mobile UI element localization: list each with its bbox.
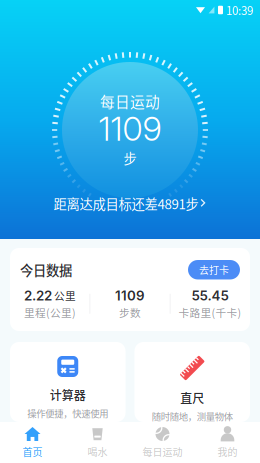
staticText: 步数	[119, 305, 141, 320]
staticText: 首页	[22, 444, 42, 459]
staticText: 2.22	[24, 287, 52, 304]
button[interactable]: 直尺	[134, 342, 250, 422]
staticText: 55.45	[191, 287, 228, 304]
staticText: 我的	[217, 444, 237, 459]
staticText: 公里	[54, 288, 76, 303]
button[interactable]: 我的	[195, 422, 260, 463]
staticText: 随时随地，测量物体	[152, 409, 233, 423]
button[interactable]: 喝水	[65, 422, 130, 463]
staticText: 1109	[98, 108, 161, 149]
staticText: 1109	[115, 287, 145, 304]
staticText: 距离达成目标还差4891步	[53, 194, 198, 213]
staticText: 喝水	[87, 444, 107, 459]
staticText: 操作便捷，快速使用	[27, 406, 108, 420]
staticText: 10:39	[226, 2, 253, 18]
button[interactable]: 首页	[0, 422, 65, 463]
button[interactable]: 每日运动	[130, 422, 195, 463]
staticText: 直尺	[180, 389, 204, 406]
staticText: 里程(公里)	[24, 305, 76, 320]
staticText: 每日运动	[142, 444, 182, 459]
staticText: 去打卡	[199, 262, 229, 277]
button[interactable]: 去打卡	[188, 260, 240, 279]
staticText: 今日数据	[20, 260, 72, 279]
staticText: 每日运动	[100, 90, 160, 112]
button[interactable]: 距离达成目标还差4891步	[43, 190, 216, 217]
staticText: 卡路里(千卡)	[178, 305, 241, 320]
staticText: 步	[123, 148, 136, 168]
staticText: 计算器	[50, 386, 86, 403]
button[interactable]: 计算器	[10, 342, 125, 422]
